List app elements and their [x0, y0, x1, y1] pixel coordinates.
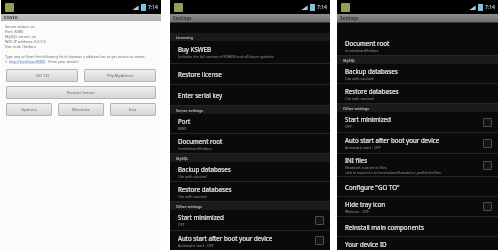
staticText: MySQL: [343, 58, 356, 63]
staticText: OFF: [345, 124, 352, 129]
staticText: 7:14: [485, 4, 495, 11]
staticText: Port: 8080: [5, 29, 24, 34]
staticText: Enter serial key: [178, 91, 223, 99]
staticText: Hide tray icon: [345, 200, 386, 208]
staticText: Restart Server: [67, 90, 95, 96]
staticText: OFF: [178, 222, 185, 227]
staticText: 7:14: [148, 4, 158, 11]
staticText: Automatic start - OFF: [345, 145, 381, 150]
staticText: http://localhost:8080/: [9, 59, 46, 64]
staticText: Settings: [173, 15, 192, 21]
staticText: (from your device): [46, 59, 79, 64]
button[interactable]: Configure "GO TO": [337, 177, 498, 196]
button[interactable]: Auto start after boot your device: [170, 231, 330, 250]
staticText: Document root: [178, 137, 223, 145]
staticText: Options: [21, 107, 37, 113]
staticText: Other settings: [343, 106, 369, 111]
staticText: 7:14: [317, 4, 327, 11]
button[interactable]: Start minimized: [170, 210, 330, 230]
staticText: 1.: [5, 59, 9, 64]
staticText: Type any url from the following list in …: [5, 54, 146, 59]
button[interactable]: PhpMyAdmin: [84, 69, 156, 82]
button[interactable]: Options: [6, 103, 52, 116]
staticText: Server settings: [176, 108, 204, 113]
button[interactable]: Backup databases: [170, 162, 330, 181]
staticText: Settings: [340, 15, 359, 21]
button[interactable]: INI files: [337, 154, 498, 176]
button[interactable]: Hide tray icon: [337, 197, 498, 216]
staticText: Other settings: [176, 204, 202, 209]
staticText: Configure "GO TO": [345, 183, 400, 191]
button[interactable]: GO TO: [6, 69, 78, 82]
button[interactable]: Backup databases: [337, 64, 498, 83]
staticText: Port: [178, 117, 191, 125]
staticText: Doc root: /htdocs: [5, 44, 36, 49]
button[interactable]: Enter serial key: [170, 85, 330, 105]
button[interactable]: Document root: [170, 134, 330, 153]
staticText: Server status: on: [5, 24, 35, 29]
staticText: Restore databases: [178, 185, 232, 193]
button[interactable]: Restore license: [170, 64, 330, 84]
staticText: /mnt/sdcard/htdocs: [345, 48, 379, 53]
staticText: /mnt/sdcard/htdocs: [178, 146, 212, 151]
button[interactable]: Start minimized: [483, 118, 492, 127]
staticText: Start minimized: [178, 213, 224, 221]
staticText: Minimize: [72, 107, 90, 113]
staticText: Auto start after boot your device: [178, 234, 273, 242]
button[interactable]: Reinstall main components: [337, 217, 498, 236]
staticText: Automatic start - OFF: [178, 243, 214, 248]
staticText: Licensing: [176, 35, 193, 40]
staticText: Start minimized: [345, 115, 391, 123]
staticText: Document root: [345, 39, 390, 47]
staticText: Includes the full version of KSWEB and a…: [178, 54, 274, 59]
staticText: Restore databases: [345, 87, 399, 95]
button[interactable]: Start minimized: [337, 112, 498, 132]
staticText: Webicon - OFF: [345, 209, 370, 214]
button[interactable]: Port: [170, 114, 330, 133]
staticText: click to move ini`s to /mnt/sdcard/ksweb…: [345, 170, 441, 175]
button[interactable]: Restart Server: [6, 86, 156, 99]
staticText: Backup databases: [345, 67, 398, 75]
staticText: MySQL: [176, 156, 189, 161]
button[interactable]: http://localhost:8080/: [9, 59, 46, 64]
button[interactable]: Start minimized: [315, 216, 324, 225]
button[interactable]: Document root: [337, 36, 498, 55]
staticText: INI files: [345, 156, 368, 164]
staticText: Exit: [129, 107, 137, 113]
staticText: Your device ID: [345, 240, 387, 248]
button[interactable]: Minimize: [58, 103, 104, 116]
staticText: Buy KSWEB: [178, 45, 212, 53]
staticText: Backup databases: [178, 165, 231, 173]
staticText: Use with caution!: [345, 76, 375, 81]
staticText: Show/set custom ini files: [345, 165, 387, 170]
button[interactable]: Auto start after boot your device: [315, 236, 324, 245]
staticText: Reinstall main components: [345, 223, 424, 231]
button[interactable]: Buy KSWEB: [170, 41, 330, 63]
button[interactable]: Hide tray icon: [483, 202, 492, 211]
staticText: 8080: [178, 126, 187, 131]
staticText: Auto start after boot your device: [345, 136, 440, 144]
staticText: Restore license: [178, 70, 222, 78]
button[interactable]: Auto start after boot your device: [483, 139, 492, 148]
staticText: GO TO: [36, 73, 49, 79]
staticText: Use with caution!: [345, 96, 375, 101]
button[interactable]: Auto start after boot your device: [337, 133, 498, 153]
staticText: WiFi IP address: 0.0.0.0: [5, 39, 46, 44]
staticText: MySQL server: on: [5, 34, 37, 39]
button[interactable]: Restore databases: [170, 182, 330, 201]
staticText: KSWEB: [4, 15, 18, 20]
staticText: Use with caution!: [178, 194, 208, 199]
button[interactable]: Your device ID: [337, 237, 498, 250]
staticText: PhpMyAdmin: [107, 73, 134, 79]
staticText: Use with caution!: [178, 174, 208, 179]
button[interactable]: Exit: [110, 103, 156, 116]
button[interactable]: Restore databases: [337, 84, 498, 103]
button[interactable]: INI files: [483, 161, 492, 170]
